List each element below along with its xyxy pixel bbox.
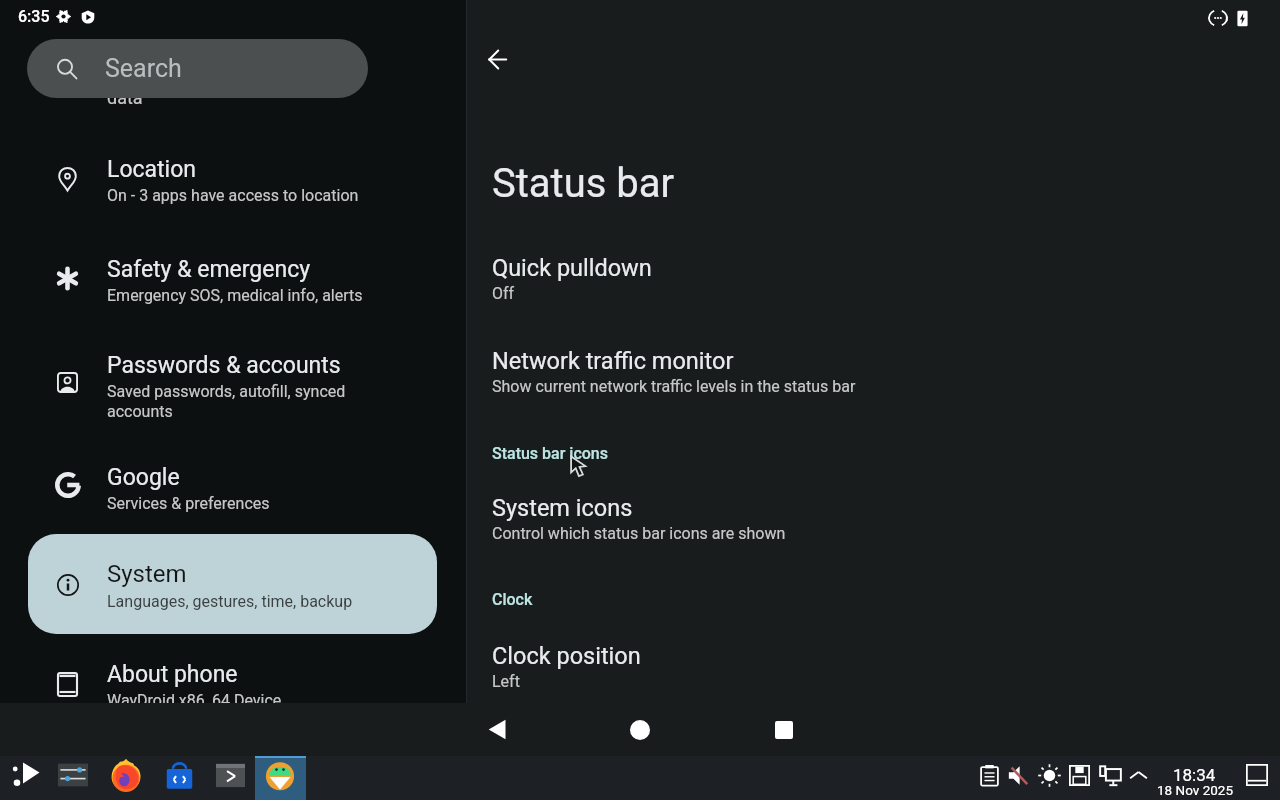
button[interactable]: Waydroid: [255, 756, 306, 800]
staticText: 6:35: [18, 7, 50, 26]
button[interactable]: Application menu: [7, 756, 45, 794]
staticText: Left: [492, 672, 520, 691]
staticText: WayDroid x86_64 Device: [107, 691, 282, 710]
button[interactable]: Safety & emergency: [0, 254, 467, 316]
button[interactable]: Show hidden icons: [1119, 756, 1157, 794]
staticText: data: [107, 87, 143, 108]
button[interactable]: System: [28, 534, 437, 634]
staticText: About phone: [107, 661, 238, 688]
button[interactable]: Google: [0, 462, 467, 524]
staticText: On - 3 apps have access to location: [107, 186, 359, 205]
staticText: Saved passwords, autofill, synced accoun…: [107, 382, 346, 421]
button[interactable]: 18:34: [1150, 756, 1239, 800]
staticText: Clock: [492, 590, 533, 609]
button[interactable]: Show desktop: [1238, 756, 1276, 794]
staticText: Clock position: [492, 642, 641, 670]
button[interactable]: Network traffic monitor: [492, 347, 1256, 407]
staticText: Emergency SOS, medical info, alerts: [107, 286, 363, 305]
button[interactable]: System icons: [492, 494, 1256, 554]
staticText: Services & preferences: [107, 494, 270, 513]
button[interactable]: Passwords & accounts: [0, 350, 467, 430]
staticText: Google: [107, 464, 180, 491]
button[interactable]: Software store: [160, 756, 198, 794]
staticText: Safety & emergency: [107, 256, 311, 283]
button[interactable]: Display configuration: [1091, 756, 1129, 794]
button[interactable]: Recent apps: [756, 703, 812, 756]
staticText: Languages, gestures, time, backup: [107, 592, 353, 611]
button[interactable]: Home: [612, 703, 668, 756]
staticText: Quick pulldown: [492, 254, 652, 282]
staticText: Control which status bar icons are shown: [492, 524, 786, 543]
button[interactable]: Back: [469, 703, 525, 756]
button[interactable]: Clock position: [492, 642, 1256, 702]
button[interactable]: Search: [27, 39, 368, 98]
button[interactable]: Settings: [54, 756, 92, 794]
staticText: Status bar: [492, 160, 675, 207]
button[interactable]: Terminal: [211, 756, 249, 794]
staticText: 18 Nov 2025: [1157, 782, 1233, 798]
staticText: Location: [107, 156, 196, 183]
staticText: Network traffic monitor: [492, 347, 734, 375]
button[interactable]: Brightness: [1030, 756, 1068, 794]
staticText: System: [107, 560, 187, 588]
button[interactable]: Clipboard: [970, 756, 1008, 794]
staticText: Search: [105, 54, 182, 83]
staticText: Show current network traffic levels in t…: [492, 377, 856, 396]
button[interactable]: Waydroid window: [261, 756, 299, 794]
button[interactable]: Disks: [1060, 756, 1098, 794]
staticText: 18:34: [1173, 765, 1216, 785]
staticText: Off: [492, 284, 515, 303]
button[interactable]: Firefox: [107, 756, 145, 794]
staticText: Status bar icons: [492, 444, 608, 463]
button[interactable]: Quick pulldown: [492, 254, 1256, 314]
staticText: System icons: [492, 494, 633, 522]
button[interactable]: About phone: [0, 659, 467, 721]
button[interactable]: Back: [474, 36, 520, 82]
button[interactable]: Volume muted: [999, 756, 1037, 794]
staticText: Passwords & accounts: [107, 352, 341, 379]
button[interactable]: Location: [0, 154, 467, 216]
